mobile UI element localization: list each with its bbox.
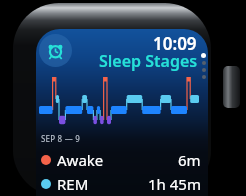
button[interactable]: REM — [41, 174, 201, 194]
staticText: REM — [57, 174, 89, 194]
staticText: Sleep Stages — [99, 50, 198, 72]
button[interactable]: Alarm — [39, 34, 72, 67]
staticText: SEP 8 — 9 — [41, 133, 80, 144]
button[interactable]: Awake — [41, 150, 201, 170]
staticText: 1h 45m — [148, 174, 201, 194]
button[interactable]: Digital Crown — [223, 66, 240, 108]
staticText: 6m — [178, 150, 201, 170]
staticText: Awake — [57, 150, 104, 170]
staticText: 10:09 — [153, 32, 197, 55]
